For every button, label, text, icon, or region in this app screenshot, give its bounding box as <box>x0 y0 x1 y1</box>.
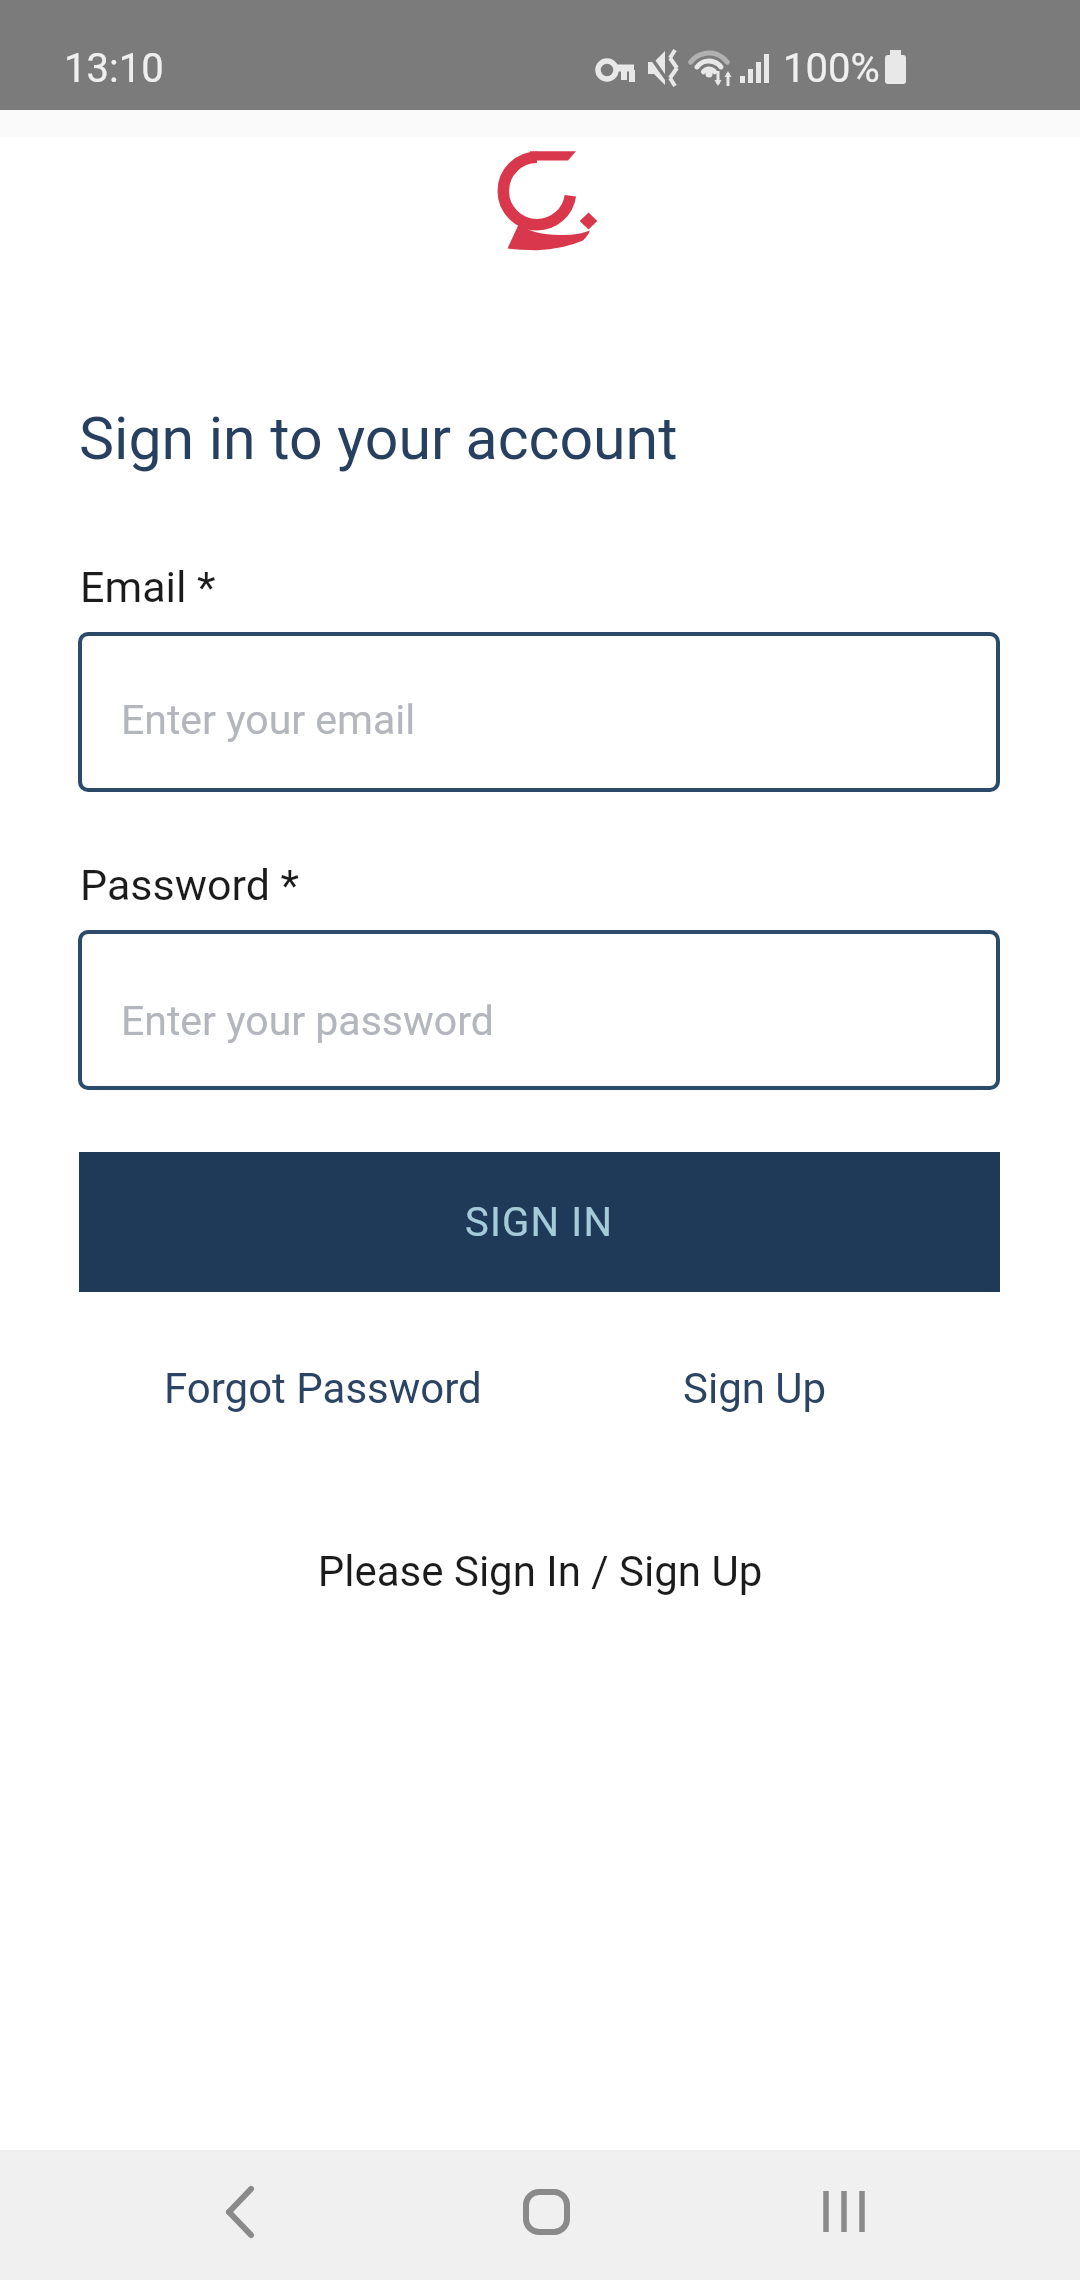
button[interactable]: Enter your password <box>78 930 1000 1090</box>
staticText: Enter your email <box>121 696 416 744</box>
staticText: 13:10 <box>64 45 164 92</box>
staticText: Please Sign In / Sign Up <box>0 1547 1080 1596</box>
button[interactable]: Enter your email <box>78 632 1000 792</box>
button[interactable] <box>485 2160 605 2270</box>
staticText: Forgot Password <box>164 1364 482 1413</box>
staticText: Sign in to your account <box>79 404 678 473</box>
button[interactable] <box>785 2160 905 2270</box>
button[interactable]: Forgot Password <box>93 1348 553 1428</box>
button[interactable]: SIGN IN <box>79 1152 1000 1292</box>
staticText: SIGN IN <box>465 1199 614 1246</box>
button[interactable] <box>180 2160 300 2270</box>
button[interactable]: Sign Up <box>525 1348 985 1428</box>
staticText: Email * <box>80 562 216 612</box>
staticText: Enter your password <box>121 997 494 1045</box>
staticText: 100% <box>783 45 880 92</box>
staticText: Sign Up <box>683 1364 827 1413</box>
staticText: Password * <box>80 860 300 910</box>
